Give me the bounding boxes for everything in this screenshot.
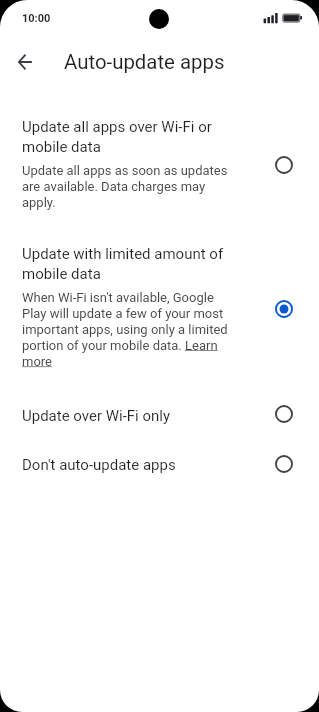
staticText: Update all apps as soon as updates are a… [22, 163, 235, 210]
staticText: Update with limited amount of mobile dat… [22, 245, 235, 282]
staticText: When Wi-Fi isn't available, Google Play … [22, 290, 235, 369]
staticText: Don't auto-update apps [22, 456, 176, 474]
staticText: Update all apps over Wi-Fi or mobile dat… [22, 118, 235, 155]
button[interactable]: Update with limited amount of mobile dat… [0, 234, 319, 382]
button[interactable]: Back [5, 42, 45, 82]
staticText: 10:00 [22, 12, 51, 25]
staticText: Auto-update apps [64, 50, 225, 74]
button[interactable]: Update over Wi-Fi only [0, 394, 319, 438]
button[interactable]: Don't auto-update apps [0, 444, 319, 488]
button[interactable]: Update all apps over Wi-Fi or mobile dat… [0, 108, 319, 224]
staticText: Update over Wi-Fi only [22, 407, 171, 425]
